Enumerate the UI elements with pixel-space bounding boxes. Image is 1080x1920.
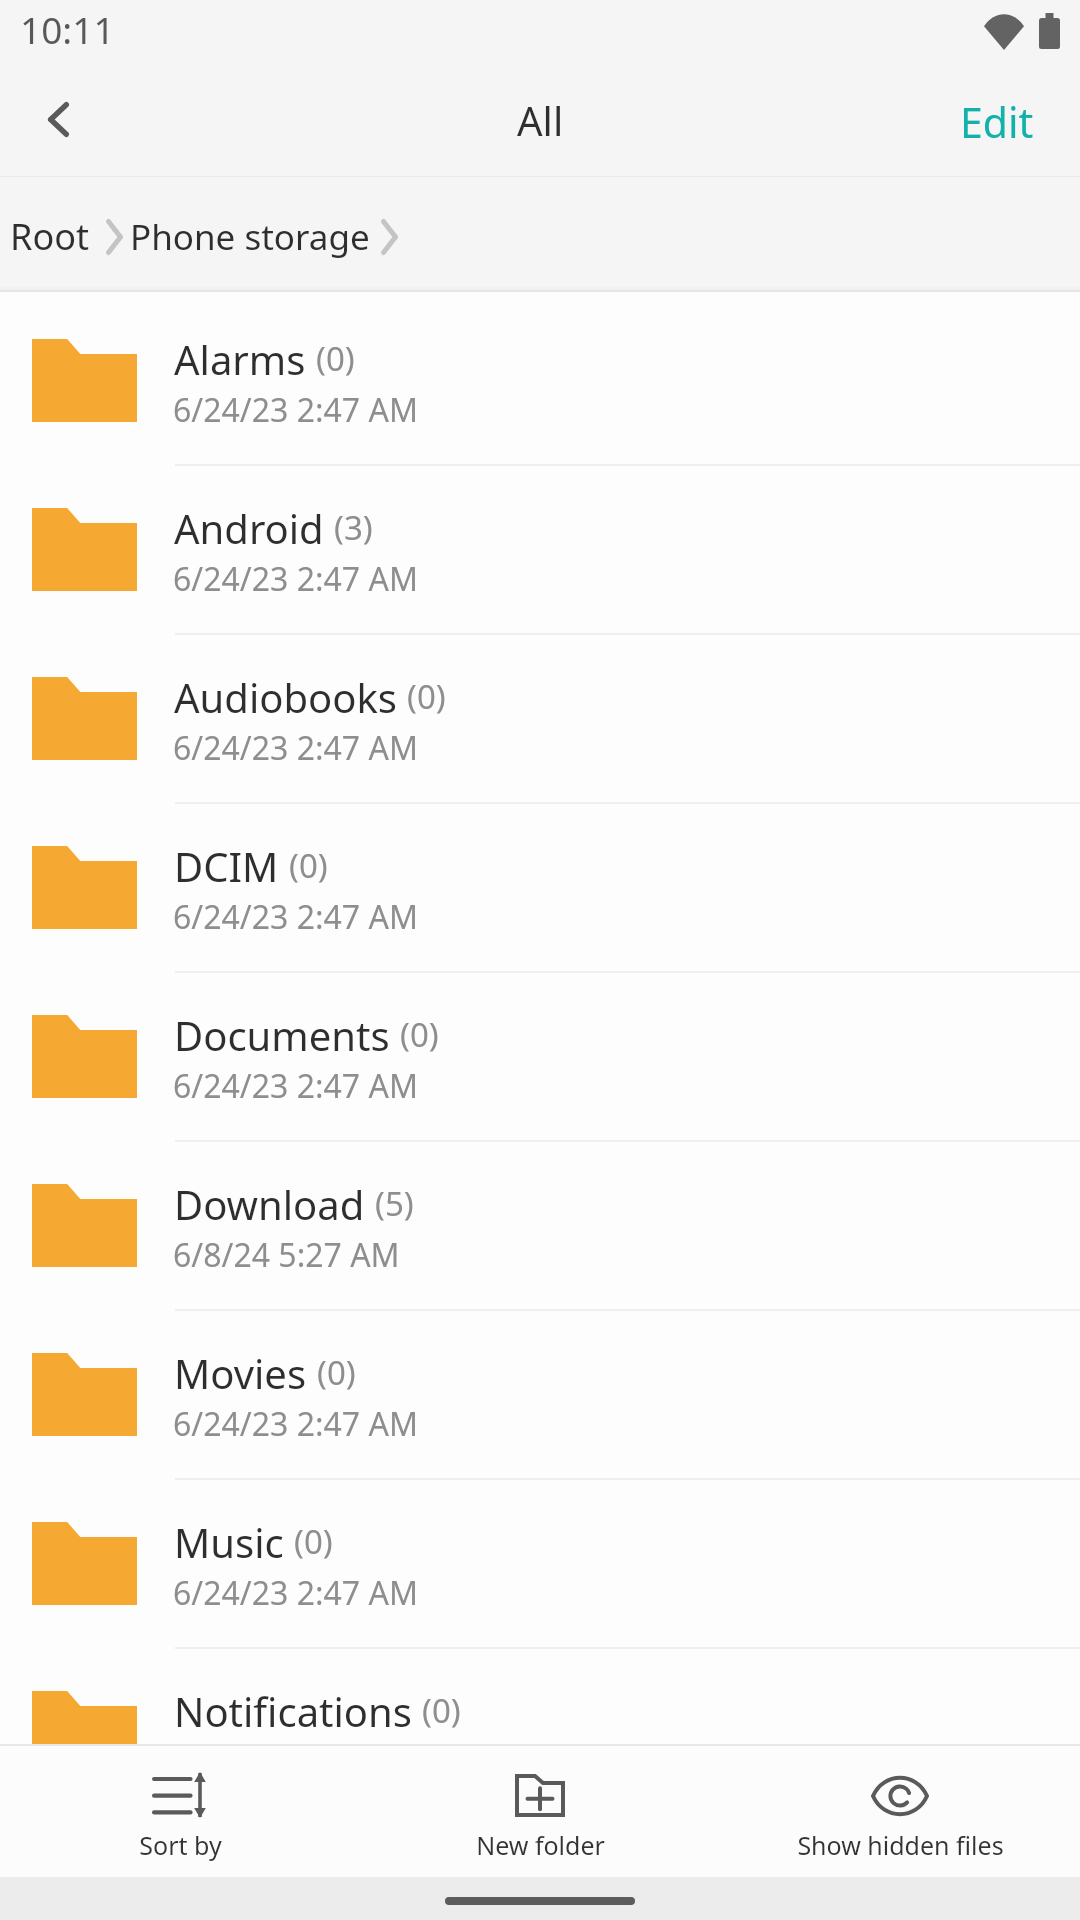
staticText: (0) <box>400 1012 439 1057</box>
staticText: (0) <box>294 1519 333 1564</box>
staticText: Music <box>174 1515 284 1569</box>
button[interactable]: Movies <box>0 1311 1080 1478</box>
button[interactable]: Android <box>0 466 1080 633</box>
staticText: (0) <box>289 843 328 888</box>
staticText: 6/24/23 2:47 AM <box>173 726 418 770</box>
staticText: (3) <box>334 505 373 550</box>
button[interactable]: Download <box>0 1142 1080 1309</box>
staticText: 10:11 <box>20 4 115 54</box>
staticText: 6/24/23 2:47 AM <box>173 895 418 939</box>
button[interactable]: Edit <box>914 78 1080 174</box>
staticText: 6/24/23 2:47 AM <box>173 388 418 432</box>
button[interactable]: Root <box>10 188 89 285</box>
button[interactable]: Back <box>0 77 116 175</box>
staticText: (0) <box>317 1350 356 1395</box>
staticText: 6/24/23 2:47 AM <box>173 1571 418 1615</box>
staticText: All <box>517 93 564 147</box>
staticText: Movies <box>174 1346 307 1400</box>
staticText: Audiobooks <box>174 670 397 724</box>
staticText: DCIM <box>174 839 279 893</box>
staticText: Android <box>174 501 324 555</box>
staticText: Root <box>10 212 89 261</box>
staticText: Show hidden files <box>797 1828 1004 1862</box>
staticText: Sort by <box>139 1828 222 1862</box>
staticText: 6/24/23 2:47 AM <box>173 1740 418 1784</box>
button[interactable]: Documents <box>0 973 1080 1140</box>
button[interactable]: New folder <box>360 1746 720 1877</box>
staticText: (0) <box>422 1688 461 1733</box>
button[interactable]: Sort by <box>0 1746 360 1877</box>
staticText: (5) <box>375 1181 414 1226</box>
staticText: Notifications <box>174 1684 412 1738</box>
button[interactable]: Alarms <box>0 292 1080 464</box>
staticText: (0) <box>316 336 355 381</box>
staticText: 6/24/23 2:47 AM <box>173 557 418 601</box>
button[interactable]: Audiobooks <box>0 635 1080 802</box>
button[interactable]: Show hidden files <box>720 1746 1080 1877</box>
staticText: Phone storage <box>130 213 370 261</box>
staticText: Edit <box>960 94 1034 150</box>
button[interactable]: Phone storage <box>130 189 370 285</box>
staticText: 6/24/23 2:47 AM <box>173 1402 418 1446</box>
staticText: Alarms <box>174 332 306 386</box>
staticText: Documents <box>174 1008 390 1062</box>
button[interactable]: Notifications <box>0 1649 1080 1744</box>
staticText: Download <box>174 1177 365 1231</box>
staticText: 6/24/23 2:47 AM <box>173 1064 418 1108</box>
button[interactable]: Music <box>0 1480 1080 1647</box>
staticText: 6/8/24 5:27 AM <box>173 1233 400 1277</box>
button[interactable]: DCIM <box>0 804 1080 971</box>
staticText: New folder <box>476 1828 605 1862</box>
staticText: (0) <box>407 674 446 719</box>
